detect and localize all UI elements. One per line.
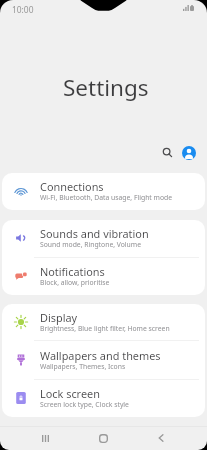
staticText: 10:00 [12, 4, 34, 15]
staticText: Block, allow, prioritise [40, 278, 110, 287]
button[interactable]: Connections [2, 173, 205, 210]
staticText: Sound mode, Ringtone, Volume [40, 240, 142, 249]
staticText: Lock screen [40, 386, 100, 401]
button[interactable]: Display [2, 304, 205, 342]
staticText: Screen lock type, Clock style [40, 400, 129, 409]
staticText: Wi-Fi, Bluetooth, Data usage, Flight mod… [40, 193, 173, 202]
button[interactable]: Wallpapers and themes [2, 342, 205, 380]
staticText: Notifications [40, 264, 105, 279]
button[interactable]: Home [74, 426, 132, 450]
staticText: Wallpapers and themes [40, 348, 161, 363]
staticText: Display [40, 310, 78, 325]
button[interactable]: Samsung account [182, 146, 196, 160]
staticText: Wallpapers, Themes, Icons [40, 362, 126, 371]
button[interactable]: Back [132, 426, 190, 450]
button[interactable]: Sounds and vibration [2, 220, 205, 258]
staticText: Brightness, Blue light filter, Home scre… [40, 324, 170, 333]
staticText: Sounds and vibration [40, 226, 149, 241]
button[interactable]: Recents [17, 426, 74, 450]
button[interactable]: Lock screen [2, 380, 205, 417]
staticText: Connections [40, 179, 104, 194]
staticText: Settings [63, 72, 149, 103]
button[interactable]: Search [159, 144, 175, 160]
button[interactable]: Notifications [2, 258, 205, 295]
